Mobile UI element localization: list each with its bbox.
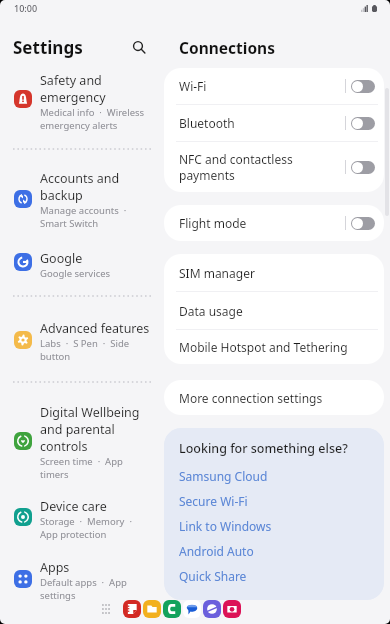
button[interactable]: Data usage bbox=[164, 292, 384, 329]
staticText: Connections bbox=[179, 37, 275, 58]
staticText: Medical info · Wireless emergency alerts bbox=[40, 106, 145, 132]
staticText: SIM manager bbox=[179, 265, 255, 281]
staticText: Safety and emergency bbox=[40, 72, 106, 106]
staticText: Bluetooth bbox=[179, 115, 345, 131]
button[interactable]: Mobile Hotspot and Tethering bbox=[164, 330, 384, 364]
button[interactable]: Phone bbox=[163, 600, 181, 618]
staticText: Secure Wi-Fi bbox=[179, 493, 248, 509]
button[interactable]: Samsung Cloud bbox=[179, 463, 372, 488]
button[interactable]: Bluetooth bbox=[164, 105, 384, 141]
staticText: Google services bbox=[40, 267, 111, 280]
button[interactable]: Google bbox=[0, 250, 164, 280]
button[interactable]: SIM manager bbox=[164, 254, 384, 291]
button[interactable]: Android Auto bbox=[179, 538, 372, 563]
staticText: Mobile Hotspot and Tethering bbox=[179, 339, 348, 355]
button[interactable]: Samsung Internet bbox=[203, 600, 221, 618]
button[interactable]: Flight mode bbox=[164, 205, 384, 241]
button[interactable]: Samsung Notes bbox=[123, 600, 141, 618]
staticText: More connection settings bbox=[179, 390, 323, 406]
button[interactable]: My Files bbox=[143, 600, 161, 618]
staticText: Manage accounts · Smart Switch bbox=[40, 204, 127, 230]
button[interactable]: Safety and emergency bbox=[0, 72, 164, 132]
button[interactable]: Search bbox=[127, 35, 151, 59]
button[interactable]: Advanced features bbox=[0, 320, 164, 363]
staticText: Wi-Fi bbox=[179, 78, 345, 94]
staticText: NFC and contactless payments bbox=[179, 151, 345, 183]
button[interactable]: Device care bbox=[0, 498, 164, 541]
staticText: Accounts and backup bbox=[40, 170, 120, 204]
button[interactable]: Wi-Fi bbox=[164, 68, 384, 104]
staticText: Screen time · App timers bbox=[40, 455, 123, 481]
button[interactable]: More connection settings bbox=[164, 380, 384, 415]
staticText: Default apps · App settings bbox=[40, 576, 127, 602]
staticText: Data usage bbox=[179, 303, 243, 319]
staticText: Google bbox=[40, 250, 83, 267]
button[interactable]: Toggle bbox=[351, 161, 375, 174]
staticText: 10:00 bbox=[14, 2, 38, 14]
staticText: Android Auto bbox=[179, 543, 254, 559]
staticText: Link to Windows bbox=[179, 518, 272, 534]
staticText: Apps bbox=[40, 559, 70, 576]
button[interactable]: Toggle bbox=[351, 80, 375, 93]
staticText: Quick Share bbox=[179, 568, 247, 584]
staticText: Samsung Cloud bbox=[179, 468, 268, 484]
staticText: Looking for something else? bbox=[179, 440, 348, 457]
staticText: Settings bbox=[13, 36, 83, 59]
staticText: Storage · Memory · App protection bbox=[40, 515, 132, 541]
button[interactable]: Messages bbox=[183, 600, 201, 618]
staticText: Labs · S Pen · Side button bbox=[40, 337, 130, 363]
button[interactable]: Toggle bbox=[351, 117, 375, 130]
button[interactable]: Accounts and backup bbox=[0, 170, 164, 230]
staticText: Device care bbox=[40, 498, 107, 515]
staticText: Digital Wellbeing and parental controls bbox=[40, 404, 140, 455]
button[interactable]: Toggle bbox=[351, 217, 375, 230]
button[interactable]: NFC and contactless payments bbox=[164, 142, 384, 192]
staticText: Advanced features bbox=[40, 320, 150, 337]
staticText: Flight mode bbox=[179, 215, 345, 231]
button[interactable]: All apps bbox=[102, 600, 110, 618]
button[interactable]: Quick Share bbox=[179, 563, 372, 588]
button[interactable]: Secure Wi-Fi bbox=[179, 488, 372, 513]
button[interactable]: Digital Wellbeing and parental controls bbox=[0, 404, 164, 481]
button[interactable]: Link to Windows bbox=[179, 513, 372, 538]
button[interactable]: Apps bbox=[0, 559, 164, 602]
button[interactable]: Camera bbox=[223, 600, 241, 618]
